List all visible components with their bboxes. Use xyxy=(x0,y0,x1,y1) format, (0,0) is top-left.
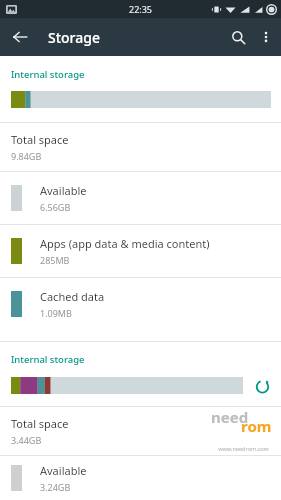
staticText: Total space xyxy=(11,132,69,147)
button[interactable]: Search xyxy=(223,22,253,52)
staticText: Cached data xyxy=(40,289,105,304)
staticText: rom xyxy=(241,416,272,436)
button[interactable]: Cached data xyxy=(0,278,281,330)
button[interactable] xyxy=(0,86,281,113)
staticText: 285MB xyxy=(40,254,70,266)
button[interactable]: Available xyxy=(0,456,281,500)
staticText: Available xyxy=(40,183,87,198)
staticText: Storage xyxy=(48,28,100,47)
staticText: Internal storage xyxy=(11,68,85,81)
button[interactable]: Refresh xyxy=(249,373,275,399)
button[interactable]: Apps (app data & media content) xyxy=(0,225,281,277)
staticText: need xyxy=(211,407,249,427)
staticText: Total space xyxy=(11,416,69,431)
button[interactable]: Total space xyxy=(0,123,281,171)
staticText: Apps (app data & media content) xyxy=(40,236,210,251)
button[interactable]: Total space xyxy=(0,407,281,455)
button[interactable]: More options xyxy=(253,24,279,50)
button[interactable]: Available xyxy=(0,172,281,224)
staticText: Available xyxy=(40,463,87,478)
staticText: 6.56GB xyxy=(40,201,71,213)
button[interactable]: Back xyxy=(6,23,34,51)
staticText: 9.84GB xyxy=(11,150,42,162)
staticText: www.needrom.com xyxy=(218,445,269,452)
staticText: 22:35 xyxy=(129,3,153,15)
staticText: Internal storage xyxy=(11,353,85,366)
staticText: 1.09MB xyxy=(40,307,72,319)
staticText: 3.24GB xyxy=(40,481,71,493)
staticText: 3.44GB xyxy=(11,434,42,446)
